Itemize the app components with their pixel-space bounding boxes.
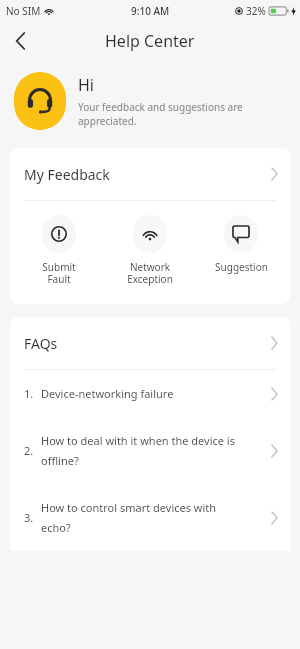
button[interactable]: Network Exception [108, 215, 192, 286]
staticText: Submit Fault [42, 260, 76, 286]
button[interactable]: My Feedback [10, 148, 290, 200]
staticText: 3. [24, 510, 34, 525]
staticText: Your feedback and suggestions are apprec… [78, 100, 243, 128]
staticText: Network Exception [127, 260, 173, 286]
staticText: FAQs [24, 334, 271, 353]
staticText: Hi [78, 74, 94, 96]
staticText: 32% [246, 4, 266, 18]
staticText: Help Center [105, 30, 195, 52]
button[interactable]: FAQs [10, 317, 290, 369]
staticText: Device-networking failure [41, 386, 265, 401]
staticText: How to control smart devices with echo? [41, 500, 265, 535]
button[interactable]: Submit Fault [17, 215, 101, 286]
staticText: No SIM [6, 4, 41, 18]
button[interactable]: 1. [10, 370, 290, 417]
button[interactable]: 3. [10, 484, 290, 551]
staticText: Suggestion [215, 260, 268, 274]
staticText: My Feedback [24, 165, 271, 184]
staticText: 1. [24, 386, 34, 401]
staticText: 2. [24, 443, 34, 458]
button[interactable]: Suggestion [199, 215, 283, 274]
button[interactable]: Back [0, 22, 40, 60]
button[interactable]: 2. [10, 417, 290, 484]
staticText: How to deal with it when the device is o… [41, 433, 265, 468]
staticText: 9:10 AM [131, 4, 170, 18]
